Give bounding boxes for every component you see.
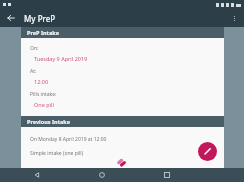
button[interactable]: At: (21, 68, 224, 85)
button[interactable]: On: (21, 45, 224, 62)
staticText: On Monday 8 April 2019 at 12:00 (30, 136, 107, 143)
staticText: On: (30, 45, 39, 52)
staticText: My PreP (24, 13, 56, 24)
staticText: Simple intake (one pill) (30, 150, 84, 157)
staticText: PreP Intake (27, 29, 59, 36)
button[interactable]: Home (95, 168, 109, 182)
button[interactable]: Back (4, 11, 18, 25)
staticText: One pill (34, 101, 54, 108)
staticText: Tuesday 9 April 2019 (34, 55, 88, 62)
staticText: 12:00 (34, 78, 49, 85)
staticText: Previous Intake (27, 118, 71, 125)
staticText: At: (30, 68, 37, 75)
button[interactable]: Pills intake: (21, 91, 224, 108)
staticText: Pills intake: (30, 91, 57, 98)
button[interactable]: Back (30, 168, 44, 182)
button[interactable]: Edit (198, 142, 217, 161)
button[interactable]: Recents (160, 168, 174, 182)
button[interactable]: More options (227, 11, 241, 25)
